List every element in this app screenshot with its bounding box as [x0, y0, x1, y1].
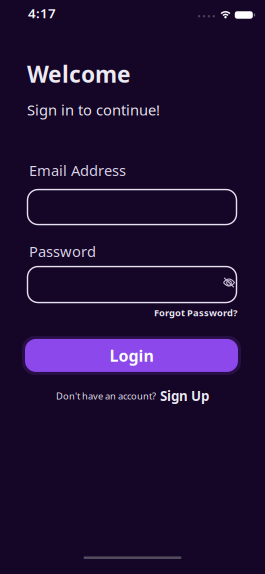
button[interactable]: Forgot Password?: [154, 306, 237, 319]
button[interactable]: Login: [22, 336, 241, 375]
staticText: Email Address: [29, 161, 126, 180]
staticText: Sign Up: [160, 387, 209, 405]
staticText: Don't have an account?: [56, 390, 156, 402]
staticText: 4:17: [28, 4, 56, 22]
staticText: Password: [29, 242, 96, 261]
staticText: Forgot Password?: [154, 306, 237, 319]
button[interactable]: [27, 266, 236, 302]
button[interactable]: [27, 190, 236, 225]
button[interactable]: Sign Up: [160, 387, 209, 405]
staticText: Sign in to continue!: [27, 100, 160, 120]
staticText: Login: [109, 345, 153, 366]
staticText: Welcome: [27, 59, 131, 89]
